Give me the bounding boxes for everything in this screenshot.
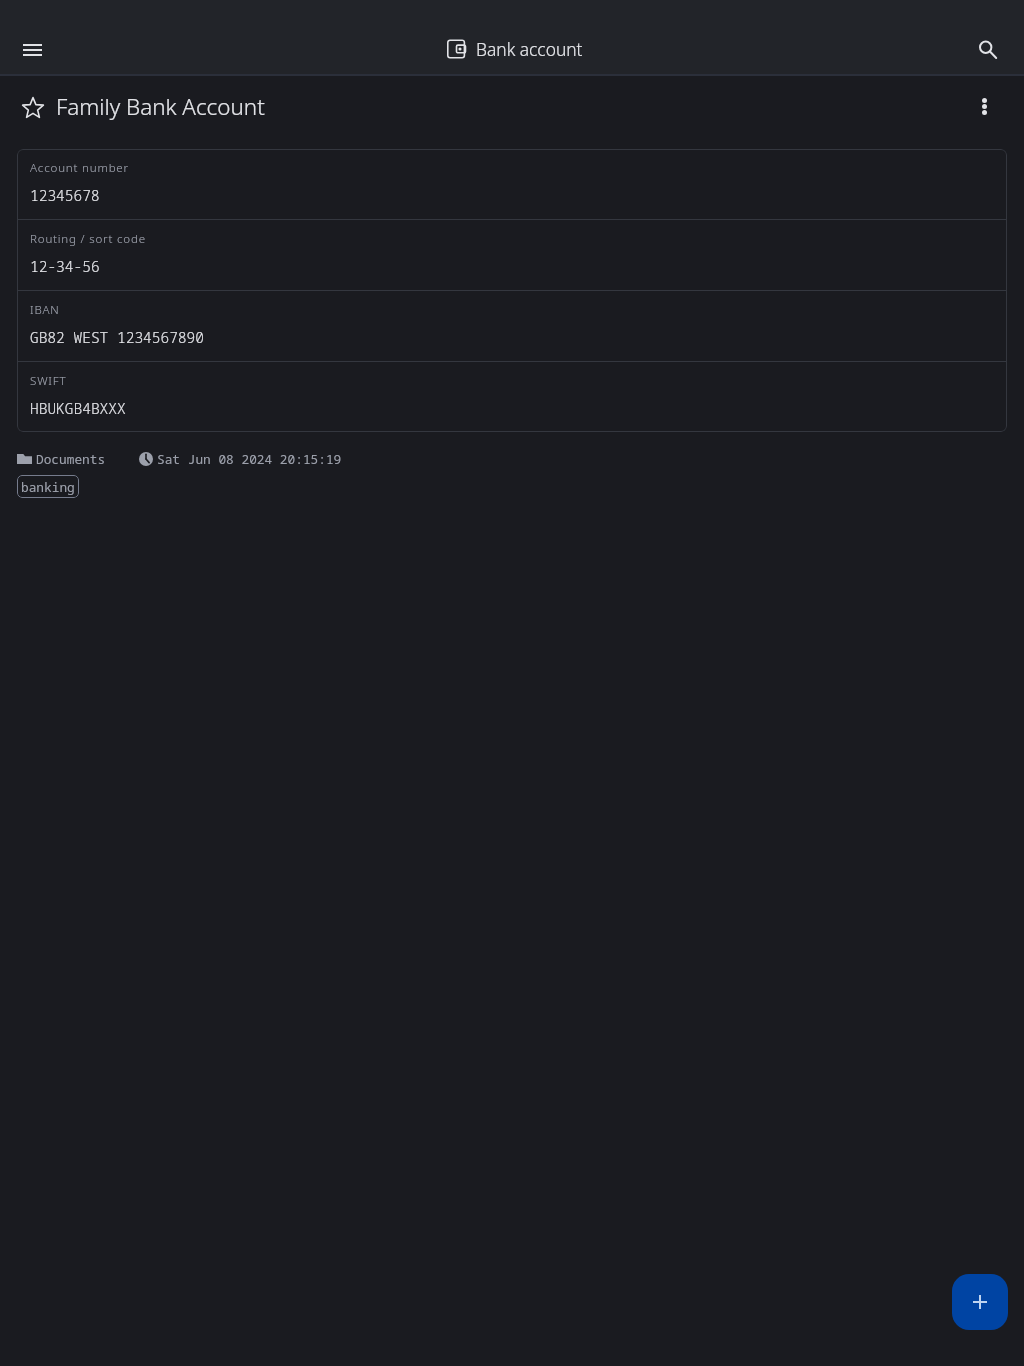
- button[interactable]: SWIFT: [17, 362, 1007, 432]
- button[interactable]: Add entry: [952, 1274, 1008, 1330]
- button[interactable]: Search: [964, 25, 1012, 73]
- button[interactable]: More options: [964, 86, 1004, 126]
- staticText: Routing / sort code: [30, 231, 146, 247]
- button[interactable]: Routing / sort code: [17, 220, 1007, 290]
- staticText: Documents: [36, 450, 106, 467]
- staticText: banking: [21, 478, 75, 495]
- staticText: SWIFT: [30, 373, 67, 389]
- staticText: Family Bank Account: [56, 91, 265, 122]
- staticText: 12345678: [30, 185, 100, 205]
- staticText: Sat Jun 08 2024 20:15:19: [157, 450, 342, 467]
- staticText: HBUKGB4BXXX: [30, 398, 126, 418]
- button[interactable]: Open navigation menu: [8, 25, 56, 73]
- staticText: IBAN: [30, 302, 60, 318]
- button[interactable]: IBAN: [17, 291, 1007, 361]
- button[interactable]: banking: [17, 475, 79, 498]
- button[interactable]: Account number: [17, 149, 1007, 219]
- staticText: 12-34-56: [30, 256, 100, 276]
- staticText: GB82 WEST 1234567890: [30, 327, 204, 347]
- staticText: Account number: [30, 160, 129, 176]
- staticText: Bank account: [476, 37, 583, 61]
- button[interactable]: Favourite: [9, 83, 56, 130]
